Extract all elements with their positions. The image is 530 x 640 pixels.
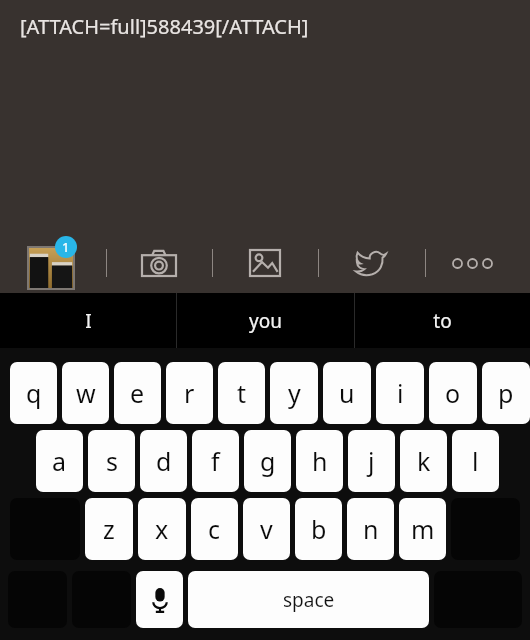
button[interactable]: j (348, 430, 395, 492)
staticText: e (130, 376, 145, 410)
button[interactable]: Camera (133, 245, 185, 281)
button[interactable]: you (177, 293, 354, 348)
button[interactable]: Voice input (136, 571, 183, 628)
staticText: [ATTACH=full]588439[/ATTACH] (20, 13, 309, 40)
button[interactable]: y (270, 362, 318, 424)
staticText: to (433, 308, 452, 334)
staticText: j (368, 444, 375, 478)
button[interactable]: Attached image (28, 236, 80, 288)
button[interactable]: z (85, 498, 133, 560)
button[interactable]: f (192, 430, 239, 492)
staticText: q (26, 376, 42, 410)
staticText: t (237, 376, 247, 410)
staticText: 1 (62, 238, 70, 256)
button[interactable]: u (323, 362, 371, 424)
button[interactable]: I (0, 293, 176, 348)
staticText: g (260, 444, 276, 478)
staticText: u (339, 376, 355, 410)
button[interactable]: a (36, 430, 83, 492)
button[interactable]: l (452, 430, 499, 492)
button[interactable]: More options (452, 245, 510, 281)
staticText: a (52, 444, 67, 478)
button[interactable]: o (429, 362, 477, 424)
staticText: y (288, 376, 301, 410)
staticText: b (311, 512, 327, 546)
staticText: m (411, 512, 435, 546)
staticText: i (397, 376, 404, 410)
staticText: h (312, 444, 328, 478)
button[interactable]: Gallery (239, 245, 291, 281)
staticText: v (260, 512, 273, 546)
staticText: f (211, 444, 220, 478)
button[interactable]: h (296, 430, 343, 492)
staticText: o (445, 376, 461, 410)
staticText: I (85, 308, 92, 334)
button[interactable]: Twitter (345, 245, 397, 281)
button[interactable]: s (88, 430, 135, 492)
button[interactable]: r (166, 362, 213, 424)
button[interactable]: p (482, 362, 530, 424)
button[interactable]: w (62, 362, 109, 424)
button[interactable]: k (400, 430, 447, 492)
button[interactable]: c (191, 498, 238, 560)
staticText: z (103, 512, 115, 546)
staticText: d (156, 444, 172, 478)
button[interactable]: d (140, 430, 187, 492)
staticText: x (155, 512, 169, 546)
staticText: k (417, 444, 431, 478)
button[interactable]: to (355, 293, 530, 348)
staticText: r (184, 376, 195, 410)
button[interactable]: i (376, 362, 424, 424)
staticText: c (208, 512, 221, 546)
staticText: w (76, 376, 96, 410)
button[interactable]: x (138, 498, 186, 560)
button[interactable]: t (218, 362, 265, 424)
staticText: you (249, 308, 282, 334)
button[interactable]: g (244, 430, 291, 492)
button[interactable]: e (114, 362, 161, 424)
staticText: p (498, 376, 514, 410)
button[interactable]: space (188, 571, 429, 628)
staticText: n (363, 512, 379, 546)
button[interactable]: v (243, 498, 290, 560)
button[interactable]: b (295, 498, 342, 560)
staticText: s (106, 444, 118, 478)
staticText: l (472, 444, 479, 478)
button[interactable]: n (347, 498, 394, 560)
staticText: space (283, 587, 335, 613)
button[interactable]: m (399, 498, 446, 560)
button[interactable]: q (10, 362, 57, 424)
